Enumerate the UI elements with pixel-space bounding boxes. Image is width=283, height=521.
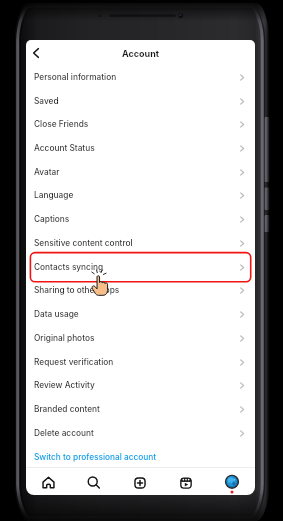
staticText: Saved xyxy=(34,96,59,106)
staticText: Review Activity xyxy=(34,380,95,390)
button[interactable]: Switch to professional account xyxy=(26,445,255,469)
staticText: Switch to professional account xyxy=(34,452,157,462)
button[interactable]: Profile xyxy=(209,469,254,495)
button[interactable]: Request verification xyxy=(26,350,255,374)
button[interactable]: Original photos xyxy=(26,326,255,350)
staticText: Sensitive content control xyxy=(34,238,133,248)
staticText: Personal information xyxy=(34,72,117,82)
button[interactable]: Home xyxy=(26,469,71,495)
staticText: Request verification xyxy=(34,357,114,367)
button[interactable]: Create new post xyxy=(117,469,162,495)
button[interactable]: Sharing to other apps xyxy=(26,278,255,302)
staticText: Branded content xyxy=(34,404,100,414)
button[interactable]: Reels xyxy=(163,469,208,495)
button[interactable]: Captions xyxy=(26,207,255,231)
button[interactable]: Data usage xyxy=(26,302,255,326)
button[interactable]: Close Friends xyxy=(26,112,255,136)
button[interactable]: Sensitive content control xyxy=(26,231,255,255)
button[interactable]: Contacts syncing xyxy=(26,255,255,279)
button[interactable]: Delete account xyxy=(26,421,255,445)
button[interactable]: Review Activity xyxy=(26,373,255,397)
staticText: Captions xyxy=(34,214,70,224)
staticText: Account Status xyxy=(34,143,95,153)
staticText: Sharing to other apps xyxy=(34,285,120,295)
staticText: Account xyxy=(122,48,160,59)
staticText: Language xyxy=(34,190,74,200)
button[interactable]: Branded content xyxy=(26,397,255,421)
button[interactable]: Account Status xyxy=(26,136,255,160)
button[interactable]: Personal information xyxy=(26,65,255,89)
staticText: Contacts syncing xyxy=(34,262,104,272)
staticText: Original photos xyxy=(34,333,95,343)
button[interactable]: Language xyxy=(26,183,255,207)
button[interactable]: Saved xyxy=(26,89,255,113)
staticText: Data usage xyxy=(34,309,79,319)
button[interactable]: Avatar xyxy=(26,160,255,184)
staticText: Close Friends xyxy=(34,119,89,129)
button[interactable]: Back xyxy=(27,44,45,62)
staticText: Delete account xyxy=(34,428,94,438)
button[interactable]: Search xyxy=(71,469,116,495)
staticText: Avatar xyxy=(34,167,60,177)
